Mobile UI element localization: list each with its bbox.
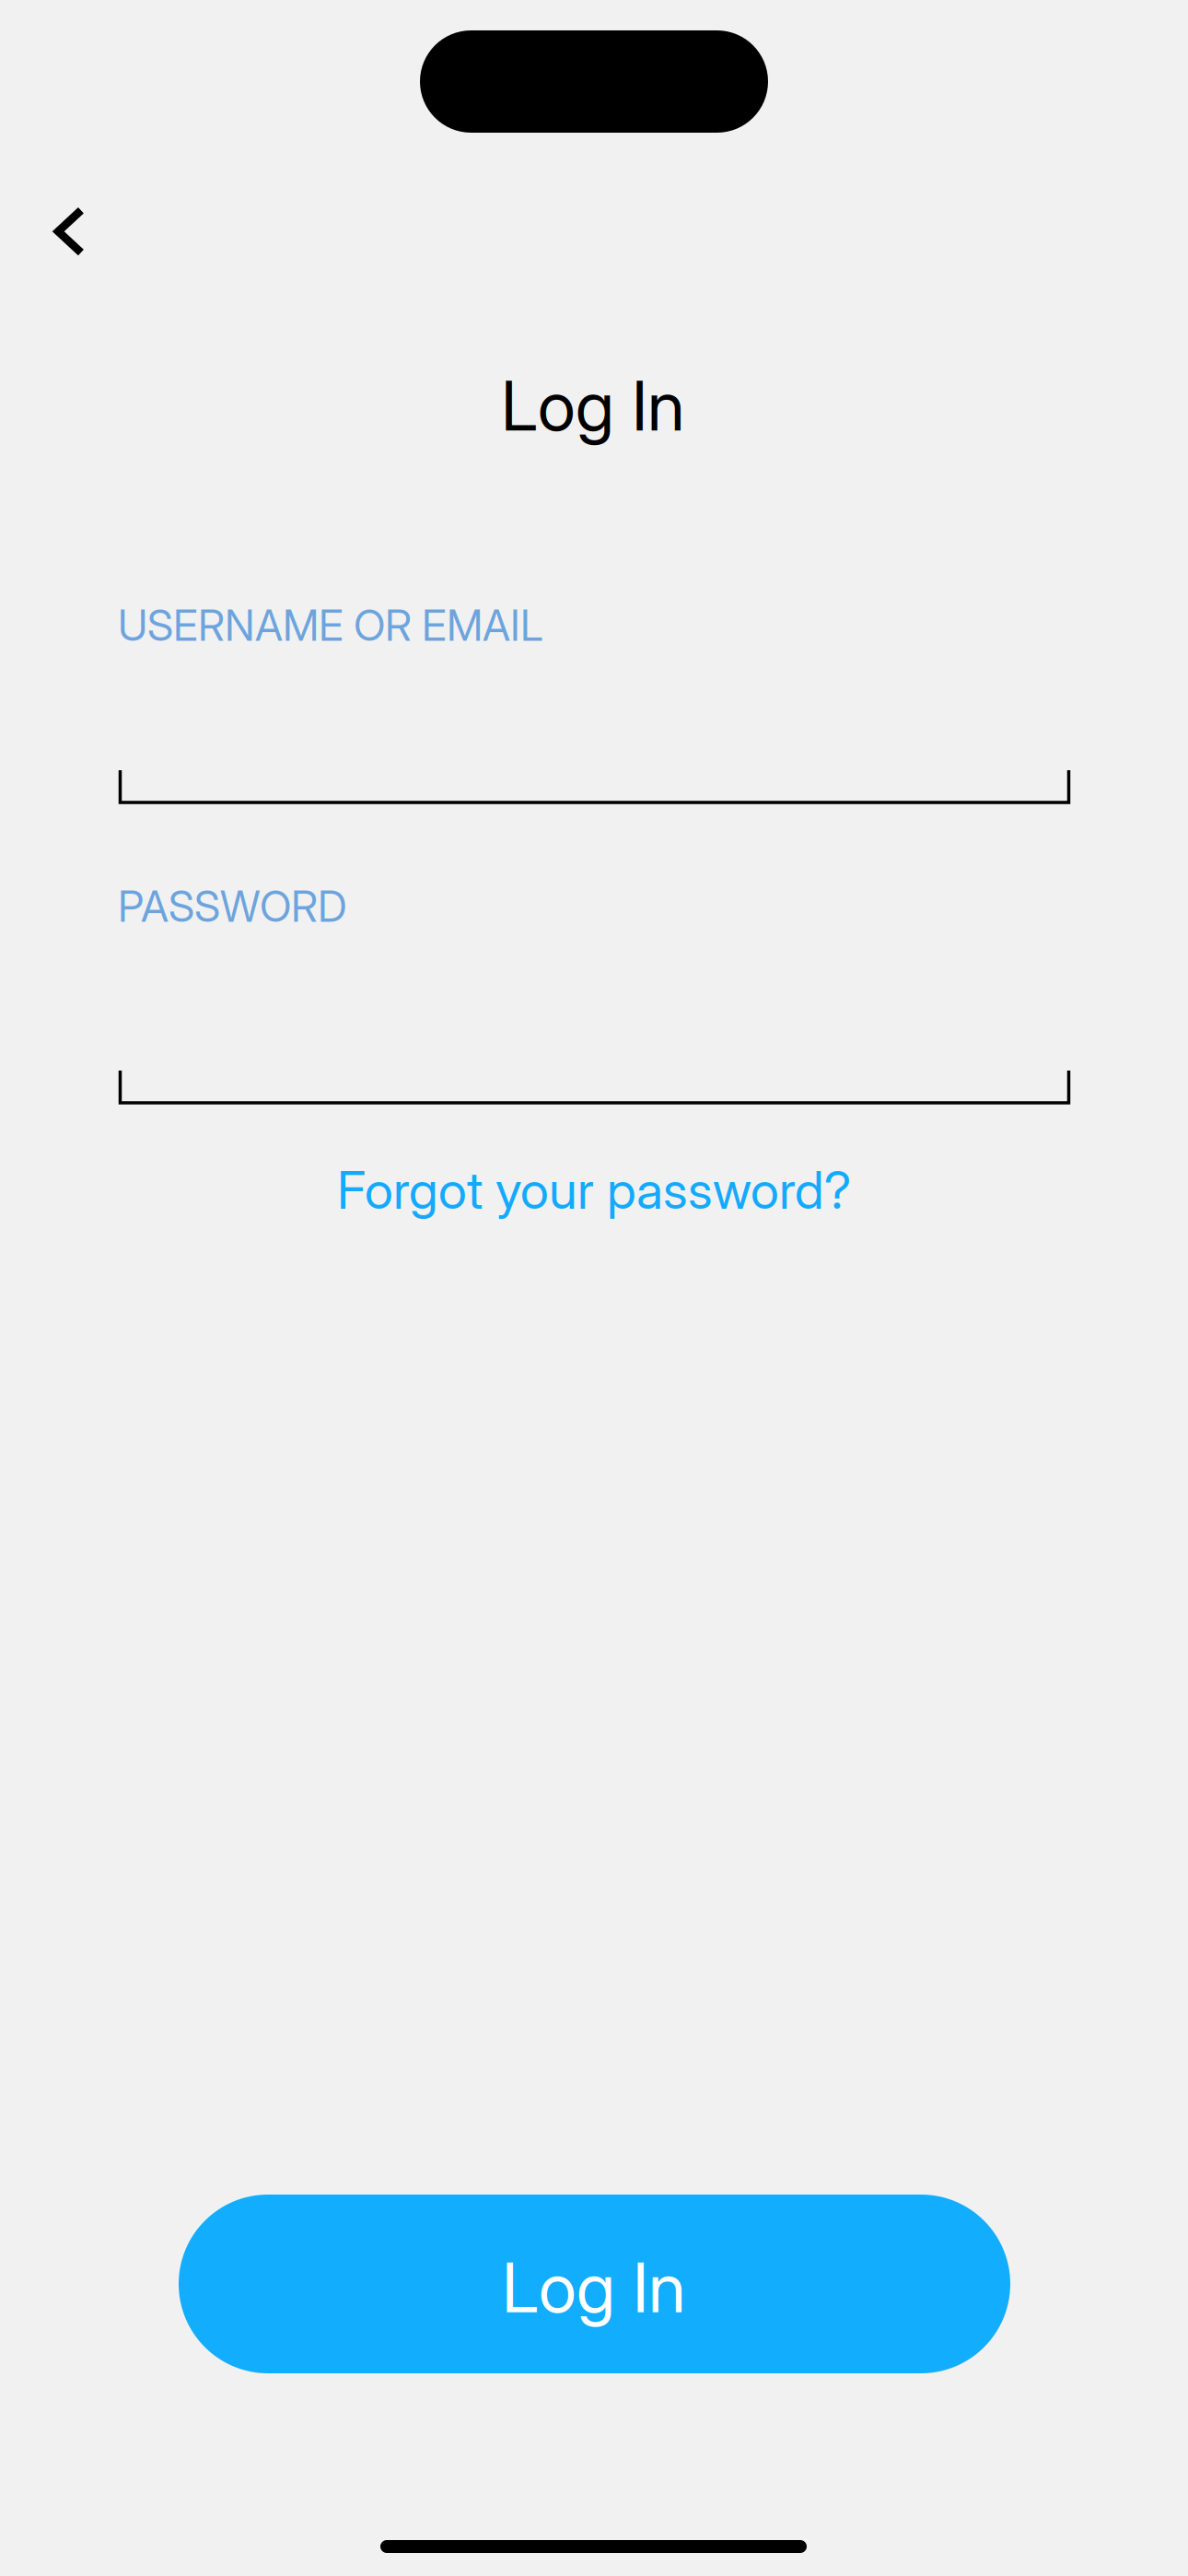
button[interactable]: Forgot your password? xyxy=(324,1146,864,1234)
staticText: Log In xyxy=(502,2246,685,2329)
staticText: USERNAME OR EMAIL xyxy=(118,600,543,651)
staticText: PASSWORD xyxy=(118,881,347,932)
button[interactable]: Log In xyxy=(179,2195,1010,2373)
staticText: Log In xyxy=(501,364,684,447)
staticText: Forgot your password? xyxy=(337,1159,851,1221)
button[interactable]: Back xyxy=(0,187,140,275)
